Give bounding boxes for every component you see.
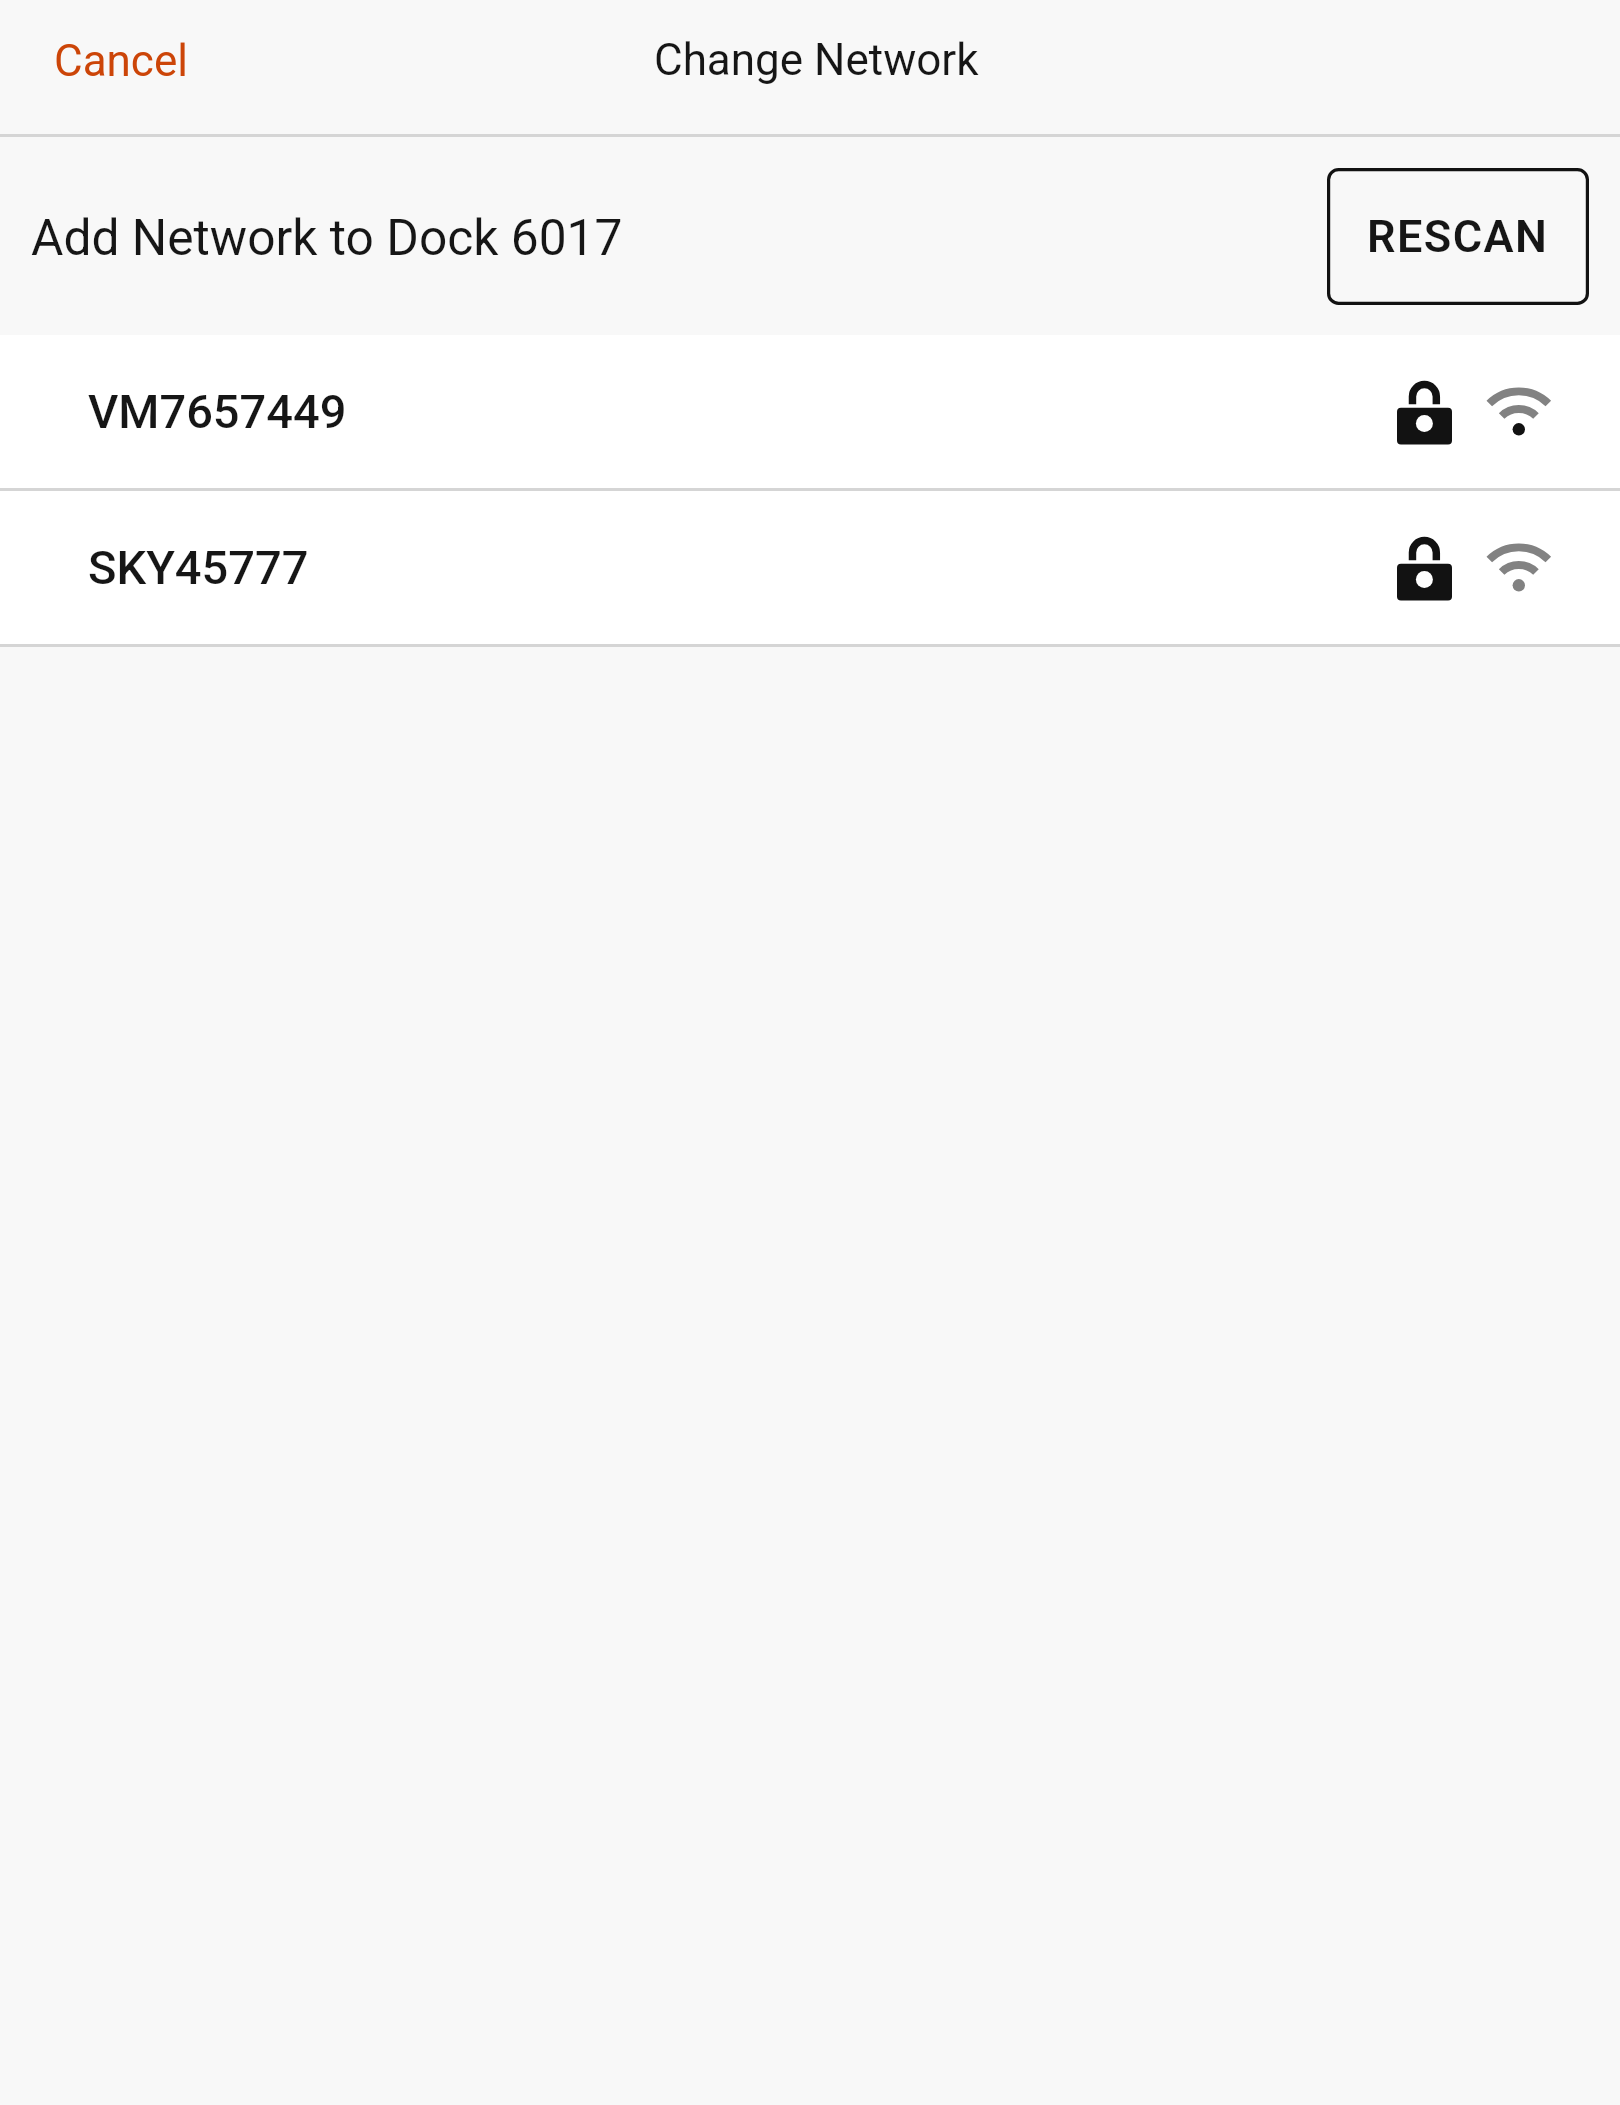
button[interactable]: RESCAN: [1327, 168, 1589, 305]
other: Wi-Fi signal strength: [1487, 543, 1551, 592]
staticText: RESCAN: [1367, 210, 1549, 263]
staticText: Add Network to Dock 6017: [31, 209, 623, 267]
button[interactable]: SKY45777: [0, 491, 1620, 644]
other: Secured network: [1397, 380, 1452, 445]
other: Secured network: [1397, 536, 1452, 601]
staticText: VM7657449: [88, 384, 347, 439]
staticText: Change Network: [654, 34, 979, 86]
button[interactable]: VM7657449: [0, 335, 1620, 488]
staticText: Cancel: [54, 35, 188, 87]
other: Wi-Fi signal strength: [1487, 387, 1551, 436]
button[interactable]: Cancel: [14, 10, 228, 112]
staticText: SKY45777: [88, 540, 309, 595]
